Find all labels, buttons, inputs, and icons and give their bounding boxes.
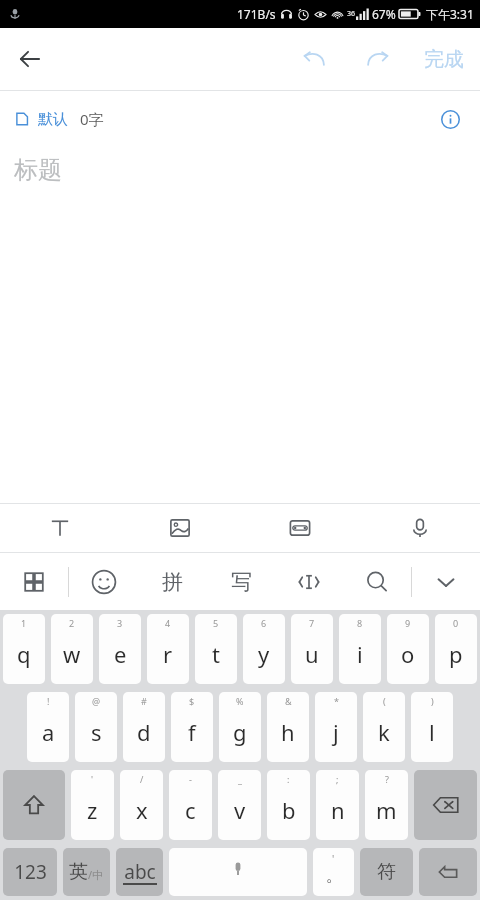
button[interactable]: '	[71, 770, 114, 840]
staticText: 6	[261, 617, 267, 629]
button[interactable]: 拼	[138, 553, 207, 610]
button[interactable]: Space	[169, 848, 307, 896]
button[interactable]: -	[169, 770, 212, 840]
button[interactable]: Emoji	[69, 553, 138, 610]
button[interactable]: '	[313, 848, 354, 896]
button[interactable]: Image	[120, 504, 240, 552]
staticText: i	[357, 639, 363, 669]
button[interactable]: Redo	[354, 35, 402, 83]
staticText: %	[236, 695, 244, 707]
button[interactable]: 0	[435, 614, 477, 684]
button[interactable]: #	[123, 692, 165, 762]
staticText: j	[333, 717, 339, 747]
staticText: m	[376, 795, 397, 825]
staticText: z	[87, 795, 98, 825]
staticText: -	[189, 773, 192, 785]
staticText: 7	[309, 617, 315, 629]
staticText: 67%	[372, 6, 396, 22]
button[interactable]: 5	[195, 614, 237, 684]
staticText: l	[429, 717, 435, 747]
button[interactable]: (	[363, 692, 405, 762]
staticText: @	[92, 695, 101, 707]
button[interactable]: 写	[207, 553, 275, 610]
staticText: 英	[69, 860, 88, 884]
button[interactable]: Keyboard menu	[0, 553, 68, 610]
staticText: _	[238, 773, 242, 785]
button[interactable]: ;	[316, 770, 359, 840]
button[interactable]: ?	[365, 770, 408, 840]
staticText: 123	[14, 859, 47, 885]
button[interactable]: 默认	[14, 109, 104, 129]
button[interactable]: Enter	[419, 848, 477, 896]
button[interactable]: 8	[339, 614, 381, 684]
staticText: f	[188, 717, 196, 747]
button[interactable]: 4	[147, 614, 189, 684]
staticText: t	[212, 639, 220, 669]
staticText: d	[137, 717, 151, 747]
button[interactable]: 完成	[416, 37, 472, 82]
staticText: 4	[165, 617, 171, 629]
button[interactable]: 符	[360, 848, 413, 896]
button[interactable]: Move cursor	[275, 553, 343, 610]
staticText: o	[401, 639, 415, 669]
staticText: abc	[124, 859, 156, 885]
button[interactable]: :	[267, 770, 310, 840]
button[interactable]: 2	[51, 614, 93, 684]
button[interactable]: Search	[343, 553, 411, 610]
staticText: v	[234, 795, 246, 825]
button[interactable]: 1	[3, 614, 45, 684]
staticText: 标题	[14, 155, 62, 185]
button[interactable]: Card	[240, 504, 360, 552]
staticText: g	[233, 717, 247, 747]
button[interactable]: 英	[63, 848, 110, 896]
staticText: p	[449, 639, 463, 669]
staticText: r	[163, 639, 173, 669]
staticText: 36	[347, 9, 356, 19]
button[interactable]: abc	[116, 848, 163, 896]
button[interactable]: &	[267, 692, 309, 762]
button[interactable]: Hide keyboard	[412, 553, 480, 610]
button[interactable]: 6	[243, 614, 285, 684]
staticText: n	[331, 795, 345, 825]
staticText: y	[258, 639, 270, 669]
button[interactable]: _	[218, 770, 261, 840]
button[interactable]: 123	[3, 848, 57, 896]
staticText: (	[383, 695, 386, 707]
button[interactable]: /	[120, 770, 163, 840]
staticText: &	[285, 695, 292, 707]
staticText: ;	[336, 773, 339, 785]
button[interactable]: Back	[6, 35, 54, 83]
staticText: 0字	[80, 109, 104, 129]
button[interactable]: Text	[0, 504, 120, 552]
button[interactable]: *	[315, 692, 357, 762]
button[interactable]: $	[171, 692, 213, 762]
staticText: 完成	[424, 47, 464, 72]
button[interactable]: @	[75, 692, 117, 762]
staticText: x	[136, 795, 148, 825]
staticText: q	[17, 639, 31, 669]
staticText: c	[185, 795, 196, 825]
button[interactable]: Voice	[360, 504, 480, 552]
button[interactable]: 9	[387, 614, 429, 684]
button[interactable]: Info	[430, 99, 470, 139]
button[interactable]: 3	[99, 614, 141, 684]
staticText: 默认	[38, 110, 68, 129]
staticText: s	[91, 717, 102, 747]
button[interactable]: %	[219, 692, 261, 762]
staticText: 2	[69, 617, 75, 629]
button[interactable]: Backspace	[414, 770, 477, 840]
button[interactable]: 7	[291, 614, 333, 684]
staticText: 5	[213, 617, 219, 629]
staticText: 9	[405, 617, 411, 629]
button[interactable]: !	[27, 692, 69, 762]
staticText: 写	[231, 569, 252, 595]
staticText: w	[63, 639, 81, 669]
staticText: :	[287, 773, 290, 785]
staticText: '	[91, 773, 94, 785]
button[interactable]: Shift	[3, 770, 65, 840]
button[interactable]: )	[411, 692, 453, 762]
staticText: ?	[385, 773, 389, 785]
button[interactable]: Undo	[290, 35, 338, 83]
staticText: /中	[88, 867, 104, 882]
staticText: !	[47, 695, 50, 707]
